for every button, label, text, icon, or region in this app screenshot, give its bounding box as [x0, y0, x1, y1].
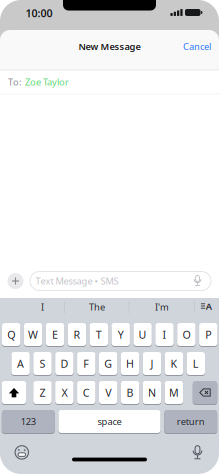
staticText: L — [193, 356, 199, 371]
staticText: M — [169, 385, 179, 400]
button[interactable]: A — [11, 351, 30, 375]
button[interactable]: Numbers — [2, 409, 55, 433]
staticText: The — [89, 301, 105, 313]
button[interactable]: S — [33, 351, 52, 375]
staticText: I'm — [155, 301, 169, 313]
button[interactable]: X — [55, 380, 74, 404]
button[interactable]: I — [155, 322, 174, 346]
button[interactable]: H — [121, 351, 139, 375]
button[interactable]: K — [165, 351, 183, 375]
button[interactable]: Text Message • SMS — [30, 271, 211, 290]
staticText: 123 — [21, 415, 36, 428]
button[interactable]: Dictation — [191, 445, 203, 459]
button[interactable]: Q — [2, 322, 20, 346]
button[interactable]: Predictive typing — [200, 301, 213, 312]
staticText: space — [97, 415, 121, 428]
staticText: A — [206, 300, 212, 312]
staticText: B — [127, 385, 134, 400]
button[interactable]: G — [99, 351, 117, 375]
staticText: K — [170, 356, 177, 371]
button[interactable]: V — [99, 380, 117, 404]
staticText: Text Message • SMS — [35, 275, 118, 287]
staticText: H — [126, 356, 134, 371]
button[interactable]: F — [77, 351, 95, 375]
staticText: F — [83, 356, 89, 371]
staticText: D — [60, 356, 68, 371]
staticText: Z — [39, 385, 45, 400]
button[interactable]: W — [24, 322, 42, 346]
staticText: return — [177, 415, 205, 428]
button[interactable]: L — [187, 351, 205, 375]
staticText: X — [61, 385, 67, 400]
staticText: V — [105, 385, 111, 400]
staticText: C — [83, 385, 90, 400]
button[interactable]: To: — [0, 70, 219, 94]
button[interactable]: The — [66, 297, 128, 317]
staticText: P — [205, 327, 211, 342]
staticText: Y — [118, 327, 124, 342]
button[interactable]: I — [11, 297, 73, 317]
button[interactable]: space — [58, 409, 160, 433]
staticText: T — [96, 327, 102, 342]
staticText: I — [162, 327, 166, 342]
staticText: O — [182, 327, 190, 342]
staticText: U — [139, 327, 147, 342]
staticText: S — [39, 356, 45, 371]
staticText: J — [150, 356, 153, 371]
button[interactable]: D — [55, 351, 74, 375]
staticText: 10:00 — [25, 6, 52, 20]
button[interactable]: Cancel — [179, 35, 215, 57]
button[interactable]: N — [143, 380, 161, 404]
button[interactable]: Z — [33, 380, 52, 404]
button[interactable]: Y — [111, 322, 130, 346]
button[interactable]: E — [46, 322, 64, 346]
button[interactable]: R — [68, 322, 86, 346]
staticText: Zoe Taylor — [25, 76, 69, 88]
button[interactable]: Apps — [7, 273, 23, 289]
button[interactable]: O — [177, 322, 196, 346]
staticText: Q — [7, 327, 15, 342]
staticText: G — [104, 356, 112, 371]
button[interactable]: J — [143, 351, 161, 375]
button[interactable]: C — [77, 380, 95, 404]
staticText: A — [17, 356, 24, 371]
button[interactable]: U — [133, 322, 152, 346]
button[interactable]: I'm — [131, 297, 193, 317]
staticText: W — [28, 327, 38, 342]
button[interactable]: P — [199, 322, 217, 346]
button[interactable]: M — [165, 380, 183, 404]
staticText: Cancel — [183, 40, 211, 53]
button[interactable]: Dictate — [192, 275, 202, 286]
staticText: I — [41, 301, 44, 313]
staticText: New Message — [78, 40, 140, 53]
button[interactable]: Emoji — [14, 445, 29, 460]
staticText: To: — [8, 76, 22, 88]
staticText: R — [73, 327, 80, 342]
staticText: N — [148, 385, 156, 400]
button[interactable]: Shift — [2, 380, 26, 404]
button[interactable]: return — [164, 409, 217, 433]
button[interactable]: Delete — [193, 380, 217, 404]
button[interactable]: T — [90, 322, 108, 346]
button[interactable]: B — [121, 380, 139, 404]
staticText: E — [52, 327, 58, 342]
